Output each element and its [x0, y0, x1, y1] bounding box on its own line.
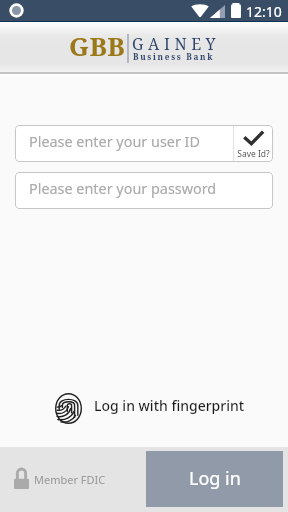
button[interactable]: Please enter your password	[15, 172, 273, 209]
staticText: Log in with fingerprint	[94, 396, 245, 415]
other: Notification	[9, 3, 24, 18]
staticText: 12:10	[246, 2, 282, 21]
staticText: GBB	[69, 28, 126, 63]
button[interactable]: Log in with fingerprint	[55, 388, 245, 422]
staticText: Log in	[189, 466, 241, 491]
staticText: Please enter your password	[29, 179, 217, 199]
button[interactable]: Save Id?	[234, 125, 273, 162]
button[interactable]: Log in	[146, 451, 283, 507]
staticText: Member FDIC	[34, 472, 106, 487]
staticText: Business Bank	[133, 51, 215, 62]
staticText: Save Id?	[237, 148, 270, 160]
staticText: Please enter your user ID	[29, 132, 200, 152]
button[interactable]: Please enter your user ID	[15, 125, 233, 162]
staticText: GAINEY	[132, 33, 221, 55]
